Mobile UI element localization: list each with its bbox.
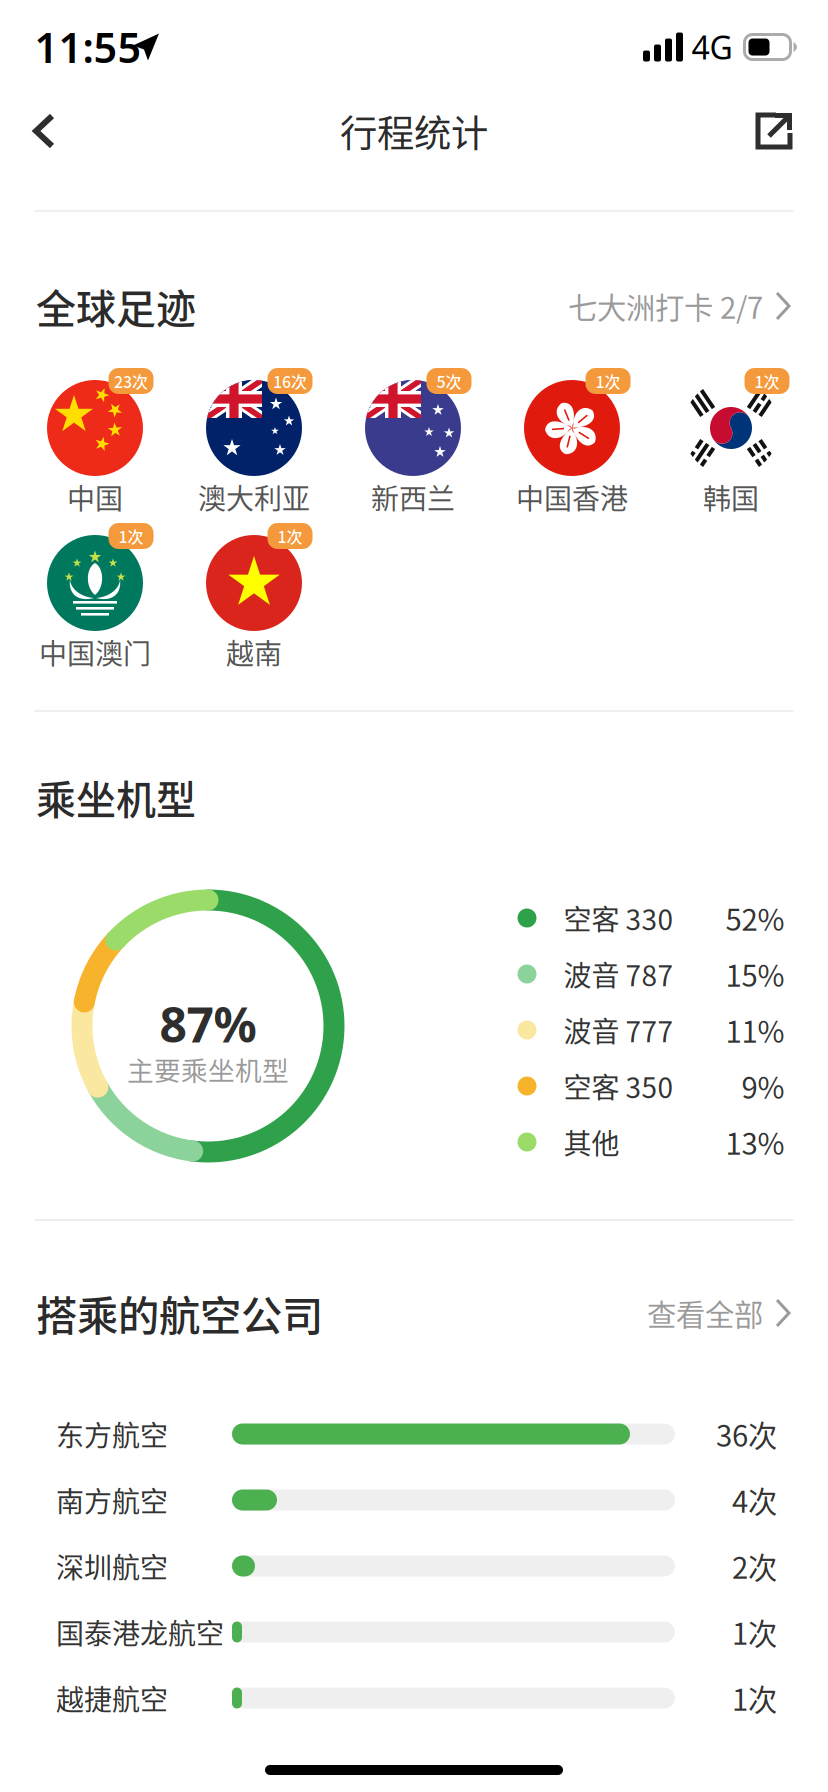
staticText: 87% xyxy=(159,992,256,1056)
staticText: 搭乘的航空公司 xyxy=(36,1283,323,1343)
staticText: 23次 xyxy=(114,369,148,393)
staticText: 36次 xyxy=(716,1413,777,1455)
staticText: 中国澳门 xyxy=(39,632,151,672)
staticText: 主要乘坐机型 xyxy=(127,1050,289,1088)
staticText: 中国香港 xyxy=(516,477,628,517)
staticText: 全球足迹 xyxy=(36,277,196,335)
staticText: 9% xyxy=(741,1065,784,1107)
button[interactable]: 1次 xyxy=(0,0,828,1792)
button[interactable]: 1次 xyxy=(0,0,828,1792)
staticText: 16次 xyxy=(273,369,307,393)
staticText: 15% xyxy=(725,953,784,995)
staticText: 4次 xyxy=(732,1479,777,1521)
staticText: 新西兰 xyxy=(371,477,455,517)
staticText: 波音 787 xyxy=(563,954,673,994)
staticText: 行程统计 xyxy=(340,104,488,158)
staticText: 11:55 xyxy=(34,20,141,74)
staticText: 南方航空 xyxy=(56,1480,168,1520)
staticText: 1次 xyxy=(732,1611,777,1653)
staticText: 波音 777 xyxy=(563,1010,673,1050)
staticText: 5次 xyxy=(436,369,461,393)
staticText: 空客 330 xyxy=(563,898,673,938)
button[interactable]: 16次 xyxy=(0,0,828,1792)
staticText: 深圳航空 xyxy=(56,1546,168,1586)
button[interactable]: 1次 xyxy=(0,0,828,1792)
staticText: 其他 xyxy=(563,1122,619,1162)
button[interactable]: 查看全部 xyxy=(647,1292,792,1334)
staticText: 1次 xyxy=(118,524,143,548)
staticText: 韩国 xyxy=(703,477,759,517)
button[interactable]: 1次 xyxy=(0,0,828,1792)
staticText: 越南 xyxy=(226,632,282,672)
staticText: 1次 xyxy=(595,369,620,393)
button[interactable]: Back xyxy=(11,91,77,171)
staticText: 13% xyxy=(725,1121,784,1163)
staticText: 中国 xyxy=(67,477,123,517)
staticText: 11% xyxy=(725,1009,784,1051)
staticText: 1次 xyxy=(277,524,302,548)
staticText: 澳大利亚 xyxy=(198,477,310,517)
staticText: 国泰港龙航空 xyxy=(56,1612,224,1652)
staticText: 查看全部 xyxy=(647,1292,763,1334)
staticText: 4G xyxy=(691,26,732,68)
staticText: 52% xyxy=(725,897,784,939)
staticText: 越捷航空 xyxy=(56,1678,168,1718)
staticText: 七大洲打卡 2/7 xyxy=(568,285,763,327)
button[interactable]: 七大洲打卡 2/7 xyxy=(568,285,792,327)
staticText: 空客 350 xyxy=(563,1066,673,1106)
staticText: 2次 xyxy=(732,1545,777,1587)
staticText: 1次 xyxy=(754,369,779,393)
staticText: 东方航空 xyxy=(56,1414,168,1454)
button[interactable]: 23次 xyxy=(0,0,828,1792)
button[interactable]: 5次 xyxy=(0,0,828,1792)
staticText: 1次 xyxy=(732,1677,777,1719)
staticText: 乘坐机型 xyxy=(36,768,196,826)
button[interactable]: Share xyxy=(735,92,813,170)
